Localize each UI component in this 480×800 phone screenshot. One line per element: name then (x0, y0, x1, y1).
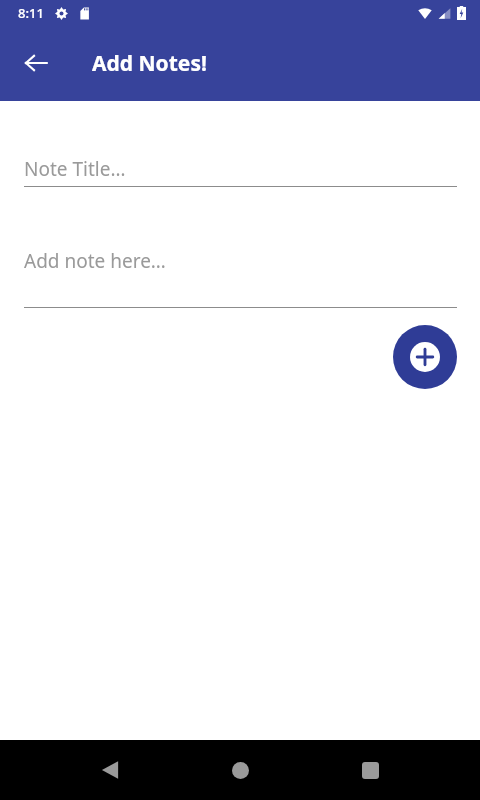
staticText: 8:11 (18, 4, 44, 22)
button[interactable]: Add note (393, 325, 457, 389)
button[interactable]: Back (86, 746, 134, 794)
button[interactable]: Recent apps (346, 746, 394, 794)
staticText: Add Notes! (92, 49, 207, 78)
staticText: Note Title… (24, 156, 126, 182)
button[interactable]: Home (216, 746, 264, 794)
button[interactable]: Back (12, 39, 60, 87)
staticText: Add note here… (24, 248, 166, 274)
